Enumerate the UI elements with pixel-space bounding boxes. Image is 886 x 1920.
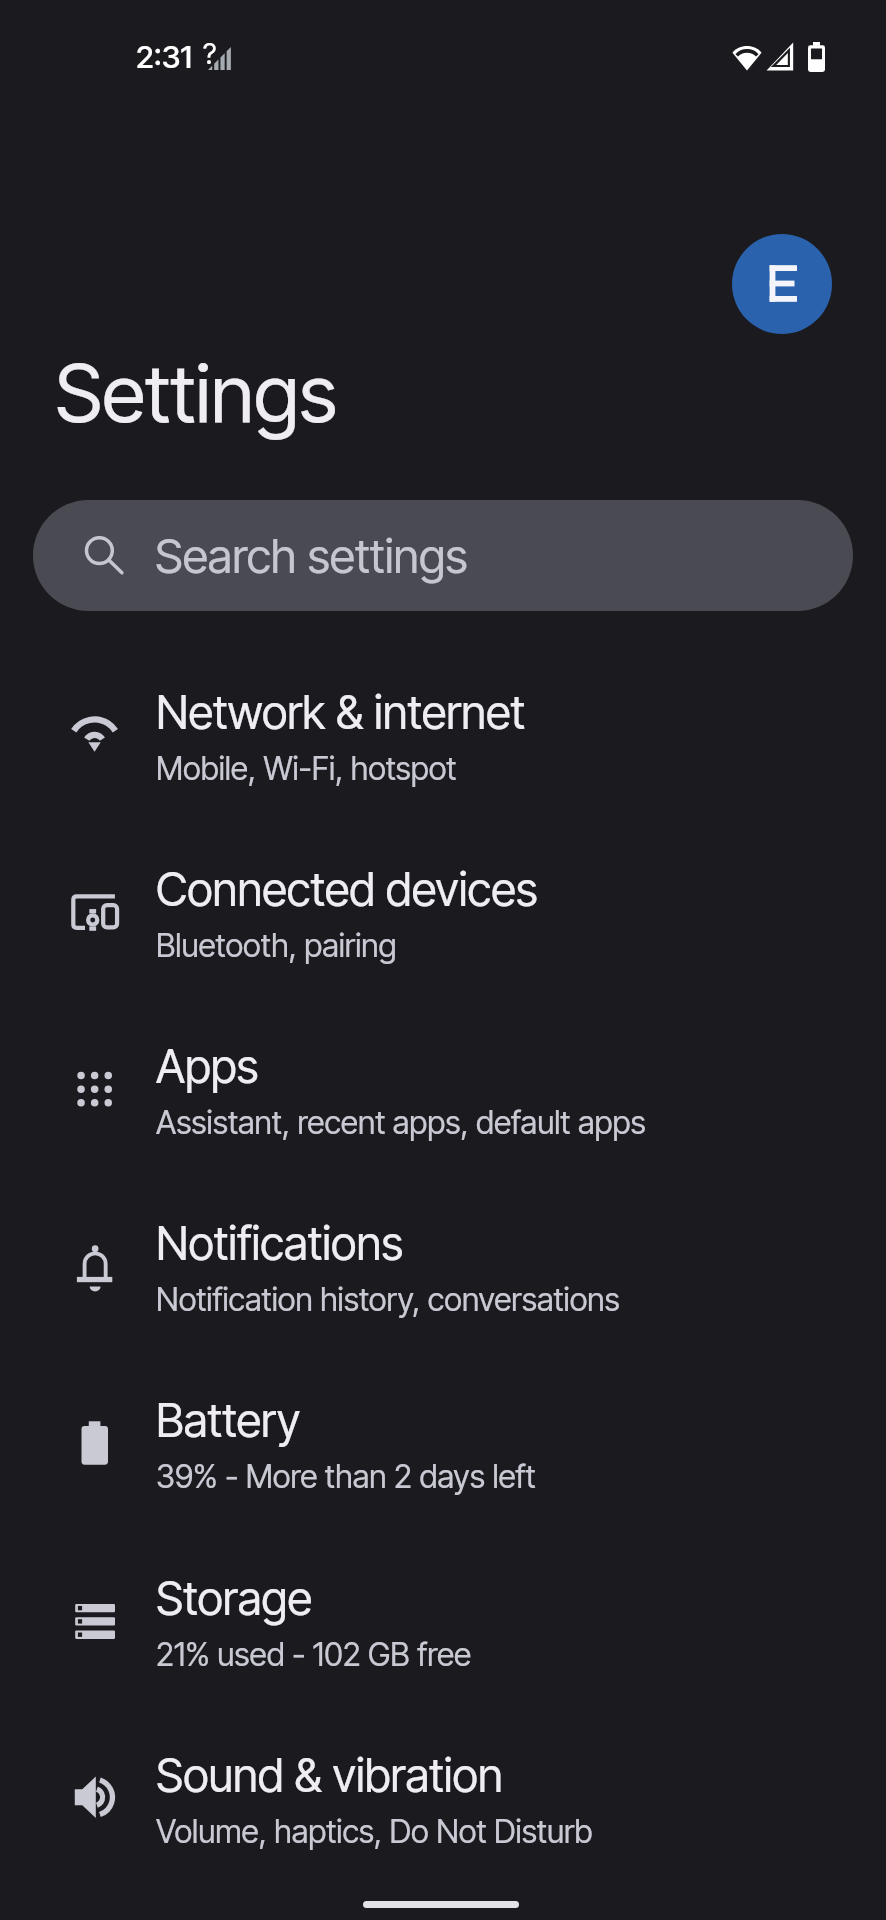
staticText: Storage <box>156 1570 312 1626</box>
staticText: 2:31 <box>136 38 192 76</box>
button[interactable]: Battery <box>0 1371 886 1548</box>
staticText: Network & internet <box>156 684 526 740</box>
button[interactable]: Sound & vibration <box>0 1726 886 1903</box>
staticText: 39% - More than 2 days left <box>156 1457 536 1496</box>
staticText: Battery <box>156 1392 301 1448</box>
staticText: Volume, haptics, Do Not Disturb <box>156 1812 593 1851</box>
staticText: Bluetooth, pairing <box>156 926 397 965</box>
staticText: Apps <box>156 1038 259 1094</box>
button[interactable]: Storage <box>0 1549 886 1726</box>
staticText: Sound & vibration <box>156 1747 503 1803</box>
staticText: Connected devices <box>156 861 538 917</box>
staticText: Mobile, Wi-Fi, hotspot <box>156 749 457 788</box>
staticText: Search settings <box>155 527 468 584</box>
staticText: Settings <box>55 344 338 441</box>
button[interactable]: Connected devices <box>0 840 886 1017</box>
button[interactable]: Search settings <box>33 500 853 611</box>
staticText: 21% used - 102 GB free <box>156 1635 472 1674</box>
staticText: ? <box>203 36 217 71</box>
button[interactable]: Account, signed in as E <box>732 234 832 334</box>
button[interactable]: Network & internet <box>0 663 886 840</box>
staticText: Notifications <box>156 1215 404 1271</box>
staticText: Assistant, recent apps, default apps <box>156 1103 646 1142</box>
button[interactable]: Apps <box>0 1017 886 1194</box>
button[interactable]: Notifications <box>0 1194 886 1371</box>
staticText: Notification history, conversations <box>156 1280 620 1319</box>
